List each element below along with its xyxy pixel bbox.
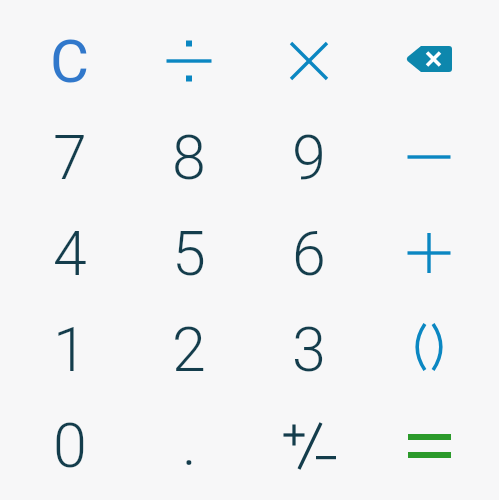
button[interactable] [369,203,489,299]
staticText: 7 [53,122,87,193]
staticText: 3 [292,314,326,385]
button[interactable]: 4 [10,203,129,299]
button[interactable] [129,13,249,108]
staticText: 4 [53,218,87,289]
staticText: 0 [53,410,87,481]
staticText: 8 [172,122,206,193]
staticText: C [50,26,90,96]
staticText: 2 [172,314,206,385]
staticText: 1 [53,314,87,385]
button[interactable] [369,108,489,203]
staticText: 9 [292,122,326,193]
button[interactable]: 2 [129,299,249,395]
button[interactable]: 3 [249,299,369,395]
button[interactable]: 8 [129,108,249,203]
staticText: 5 [172,218,206,289]
button[interactable] [249,13,369,108]
button[interactable] [369,13,489,108]
button[interactable]: 0 [10,395,129,491]
button[interactable]: 9 [249,108,369,203]
button[interactable]: 7 [10,108,129,203]
staticText: 6 [292,218,326,289]
button[interactable]: 5 [129,203,249,299]
button[interactable] [369,299,489,395]
button[interactable]: . [129,395,249,491]
button[interactable]: 6 [249,203,369,299]
button[interactable] [249,395,369,491]
button[interactable] [369,395,489,491]
staticText: . [182,408,197,479]
button[interactable]: 1 [10,299,129,395]
button[interactable]: C [10,13,129,108]
